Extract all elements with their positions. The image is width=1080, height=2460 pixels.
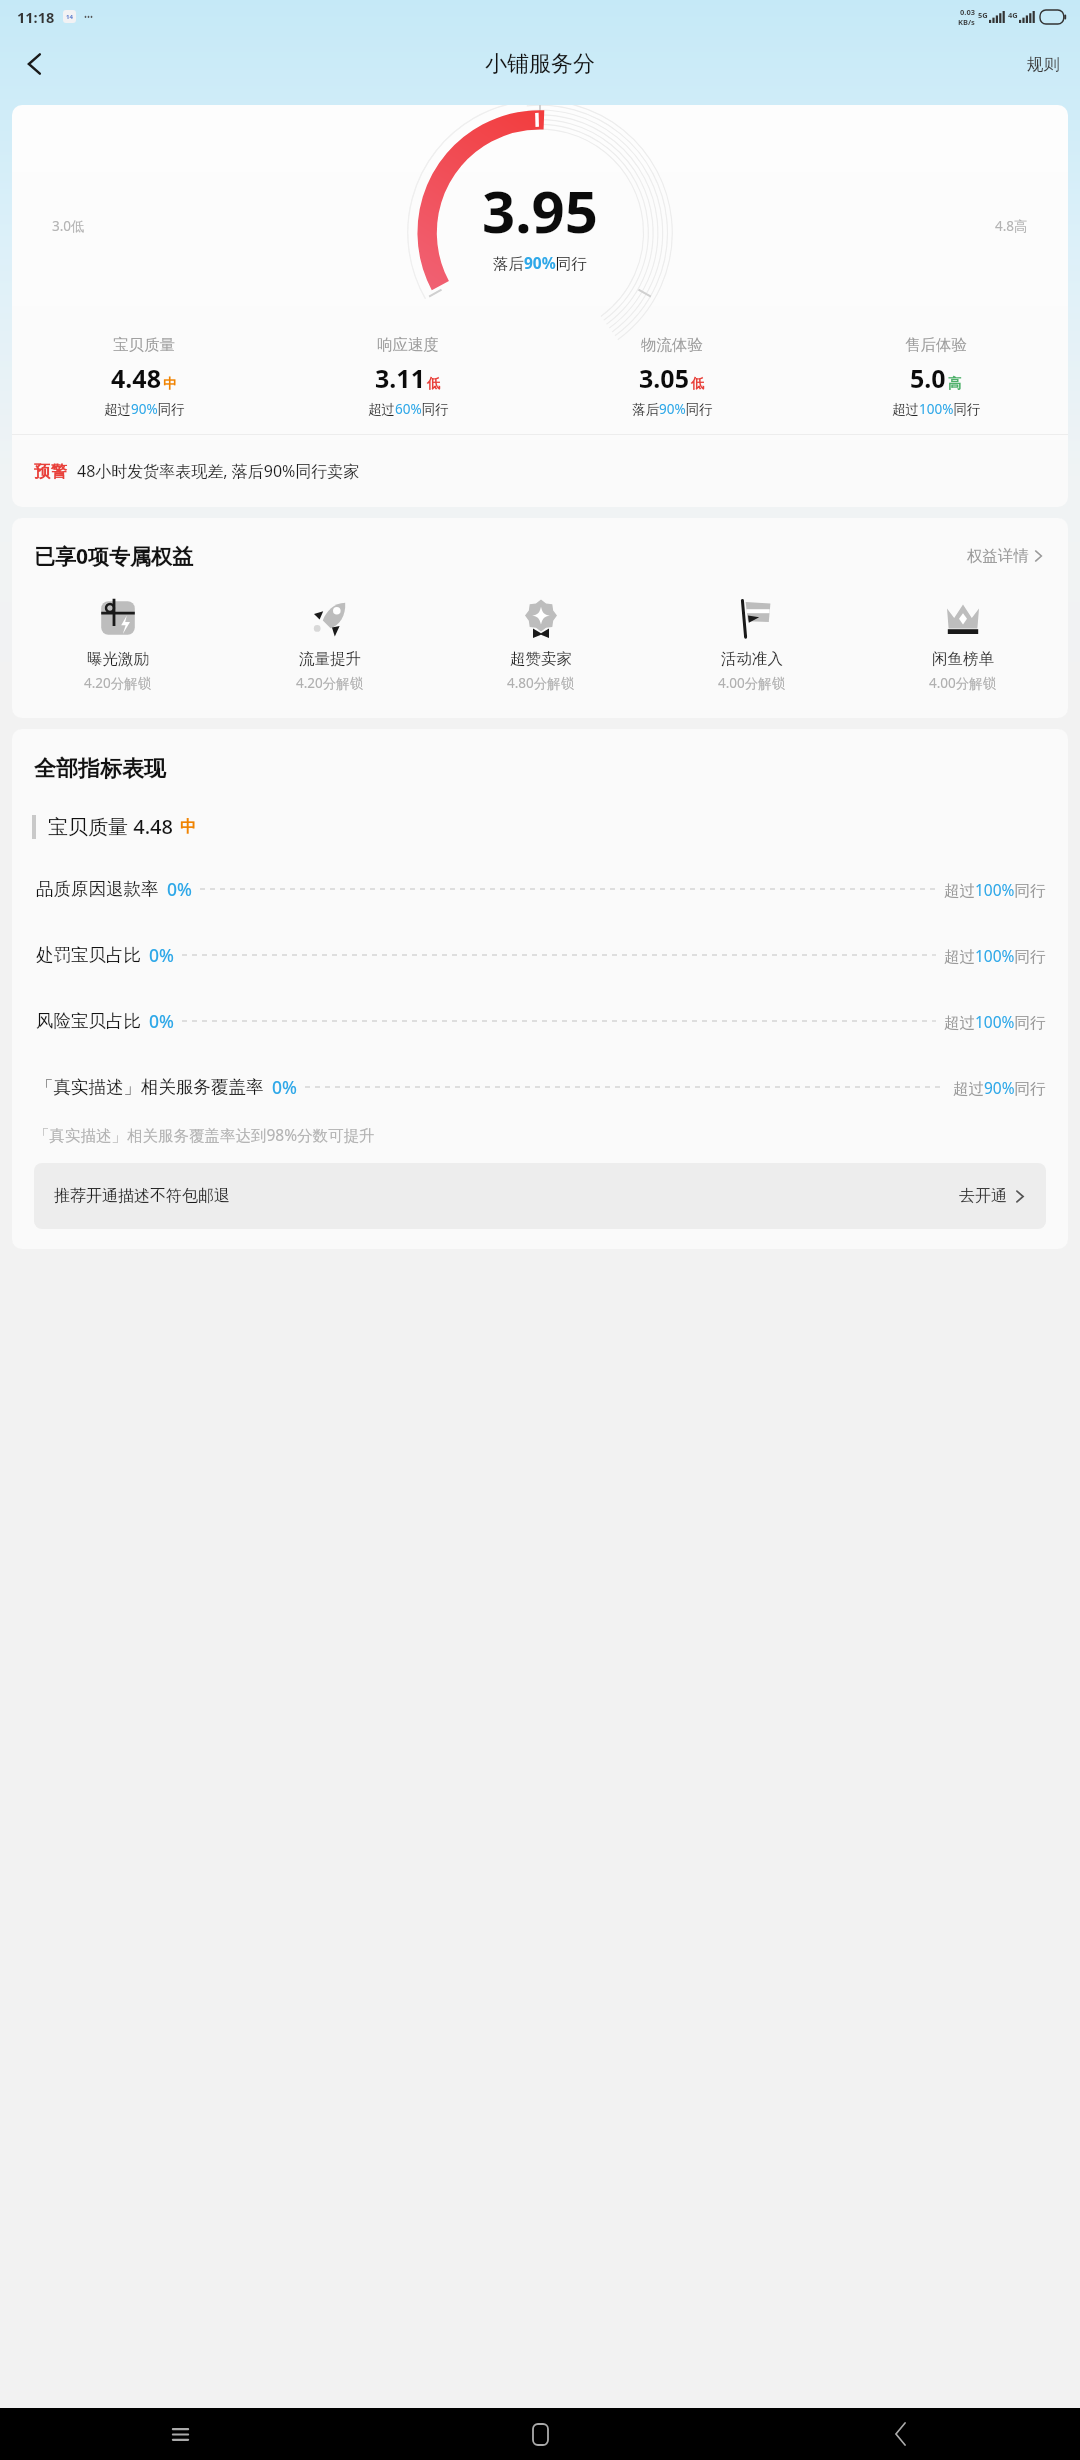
staticText: 中 xyxy=(180,817,196,837)
staticText: 0% xyxy=(272,1075,297,1099)
staticText: 14 xyxy=(66,13,73,21)
button[interactable]: 宝贝质量 xyxy=(12,335,276,418)
staticText: 超过100%同行 xyxy=(892,400,981,418)
staticText: 推荐开通描述不符包邮退 xyxy=(54,1186,230,1206)
staticText: 4G xyxy=(1008,10,1018,20)
staticText: 超过100%同行 xyxy=(944,1011,1046,1032)
button[interactable]: 权益详情 xyxy=(961,540,1050,572)
staticText: 售后体验 xyxy=(905,335,967,355)
button[interactable]: 流量提升 xyxy=(224,598,435,692)
staticText: 5.0 xyxy=(910,361,946,395)
button[interactable]: 活动准入 xyxy=(646,598,857,692)
staticText: 超过90%同行 xyxy=(104,400,185,418)
staticText: 响应速度 xyxy=(377,335,439,355)
staticText: 已享0项专属权益 xyxy=(34,542,194,571)
button[interactable]: 推荐开通描述不符包邮退 xyxy=(34,1163,1046,1229)
staticText: 超过60%同行 xyxy=(368,400,449,418)
staticText: 低 xyxy=(427,375,441,392)
staticText: 3.05 xyxy=(639,361,689,395)
staticText: 去开通 xyxy=(959,1186,1007,1206)
button[interactable]: 曝光激励 xyxy=(12,598,224,692)
staticText: 全部指标表现 xyxy=(34,755,166,783)
staticText: 11:18 xyxy=(17,7,55,27)
staticText: 风险宝贝占比 xyxy=(36,1010,141,1032)
staticText: 4.00分解锁 xyxy=(929,674,997,692)
staticText: 活动准入 xyxy=(721,649,783,669)
staticText: 超赞卖家 xyxy=(510,649,572,669)
staticText: 超过100%同行 xyxy=(944,945,1046,966)
staticText: 曝光激励 xyxy=(87,649,149,669)
staticText: 超过90%同行 xyxy=(953,1077,1046,1098)
staticText: 4.48 xyxy=(111,361,161,395)
staticText: 4.8高 xyxy=(995,217,1028,235)
staticText: 4.80分解锁 xyxy=(507,674,575,692)
staticText: 小铺服务分 xyxy=(485,50,595,78)
staticText: 品质原因退款率 xyxy=(36,878,159,900)
staticText: 4.00分解锁 xyxy=(718,674,786,692)
staticText: 规则 xyxy=(1027,54,1060,75)
staticText: 闲鱼榜单 xyxy=(932,649,994,669)
staticText: 0% xyxy=(167,877,192,901)
staticText: 「真实描述」相关服务覆盖率 xyxy=(36,1076,264,1098)
staticText: 宝贝质量 xyxy=(113,335,175,355)
staticText: 低 xyxy=(691,375,705,392)
button[interactable]: 超赞卖家 xyxy=(435,598,646,692)
staticText: 0.03 xyxy=(960,7,975,17)
staticText: 3.11 xyxy=(375,361,425,395)
button[interactable]: 规则 xyxy=(1007,42,1080,87)
button[interactable]: 售后体验 xyxy=(804,335,1068,418)
button[interactable]: Recent apps xyxy=(0,2408,360,2460)
staticText: 预警 xyxy=(34,461,67,482)
button[interactable]: Home xyxy=(360,2408,720,2460)
button[interactable]: 物流体验 xyxy=(540,335,804,418)
button[interactable]: 风险宝贝占比 xyxy=(12,988,1068,1054)
staticText: 0% xyxy=(149,1009,174,1033)
staticText: 0% xyxy=(149,943,174,967)
staticText: 「真实描述」相关服务覆盖率达到98%分数可提升 xyxy=(34,1124,375,1145)
staticText: 4.20分解锁 xyxy=(296,674,364,692)
button[interactable]: 处罚宝贝占比 xyxy=(12,922,1068,988)
staticText: 3.0低 xyxy=(52,217,85,235)
button[interactable]: 预警 xyxy=(12,435,1068,507)
button[interactable]: 品质原因退款率 xyxy=(12,856,1068,922)
button[interactable]: Back xyxy=(720,2408,1080,2460)
button[interactable]: 响应速度 xyxy=(276,335,540,418)
button[interactable]: 「真实描述」相关服务覆盖率 xyxy=(12,1054,1068,1120)
staticText: 宝贝质量 4.48 xyxy=(48,813,173,840)
staticText: ••• xyxy=(84,11,94,22)
staticText: 流量提升 xyxy=(299,649,361,669)
staticText: 权益详情 xyxy=(967,546,1029,566)
staticText: 超过100%同行 xyxy=(944,879,1046,900)
staticText: 落后90%同行 xyxy=(493,252,587,273)
staticText: 落后90%同行 xyxy=(632,400,713,418)
staticText: 物流体验 xyxy=(641,335,703,355)
button[interactable]: Back xyxy=(8,37,62,91)
staticText: 中 xyxy=(163,375,177,392)
staticText: 处罚宝贝占比 xyxy=(36,944,141,966)
staticText: KB/s xyxy=(958,17,975,27)
staticText: 5G xyxy=(978,10,988,20)
staticText: 3.95 xyxy=(482,171,598,250)
staticText: 48小时发货率表现差, 落后90%同行卖家 xyxy=(77,460,360,482)
staticText: 高 xyxy=(948,375,962,392)
staticText: 4.20分解锁 xyxy=(84,674,152,692)
button[interactable]: 闲鱼榜单 xyxy=(857,598,1068,692)
